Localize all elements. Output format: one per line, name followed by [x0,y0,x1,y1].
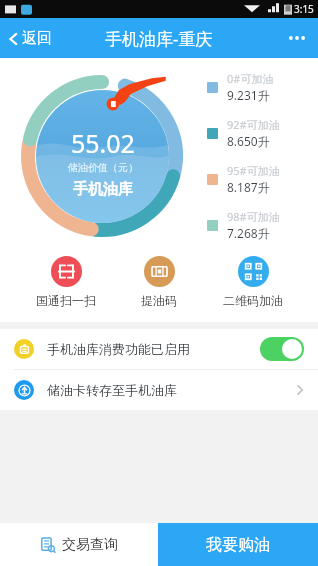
staticText: 交易查询 [62,536,118,554]
staticText: 0#可加油 [227,71,274,86]
staticText: 9.231升 [227,87,270,103]
button[interactable]: 交易查询 [0,523,158,566]
staticText: 92#可加油 [227,117,280,132]
staticText: 提油码 [141,293,177,308]
staticText: 98#可加油 [227,209,280,224]
button[interactable]: More options [276,24,318,52]
button[interactable]: 储油卡转存至手机油库 [0,370,318,410]
staticText: 返回 [22,29,52,48]
button[interactable]: 二维码加油 [213,254,293,310]
staticText: 3:15 [294,2,314,16]
button[interactable]: 手机油库消费功能已启用 [0,329,318,369]
staticText: 8.187升 [227,179,270,195]
staticText: 55.02 [71,126,135,160]
staticText: 8.650升 [227,133,270,149]
staticText: 手机油库消费功能已启用 [47,341,190,357]
staticText: 我要购油 [206,535,270,555]
button[interactable]: 我要购油 [158,523,318,566]
staticText: 国通扫一扫 [36,293,96,308]
button[interactable]: 提油码 [131,254,187,310]
staticText: 95#可加油 [227,163,280,178]
staticText: 二维码加油 [223,293,283,308]
staticText: 手机油库 [73,180,133,199]
button[interactable]: 国通扫一扫 [26,254,106,310]
button[interactable]: 返回 [0,23,62,54]
staticText: 7.268升 [227,225,270,241]
button[interactable]: Toggle consumption [260,337,304,361]
staticText: 储油卡转存至手机油库 [47,382,177,398]
staticText: 储油价值（元） [68,161,138,174]
staticText: 手机油库-重庆 [105,27,213,50]
